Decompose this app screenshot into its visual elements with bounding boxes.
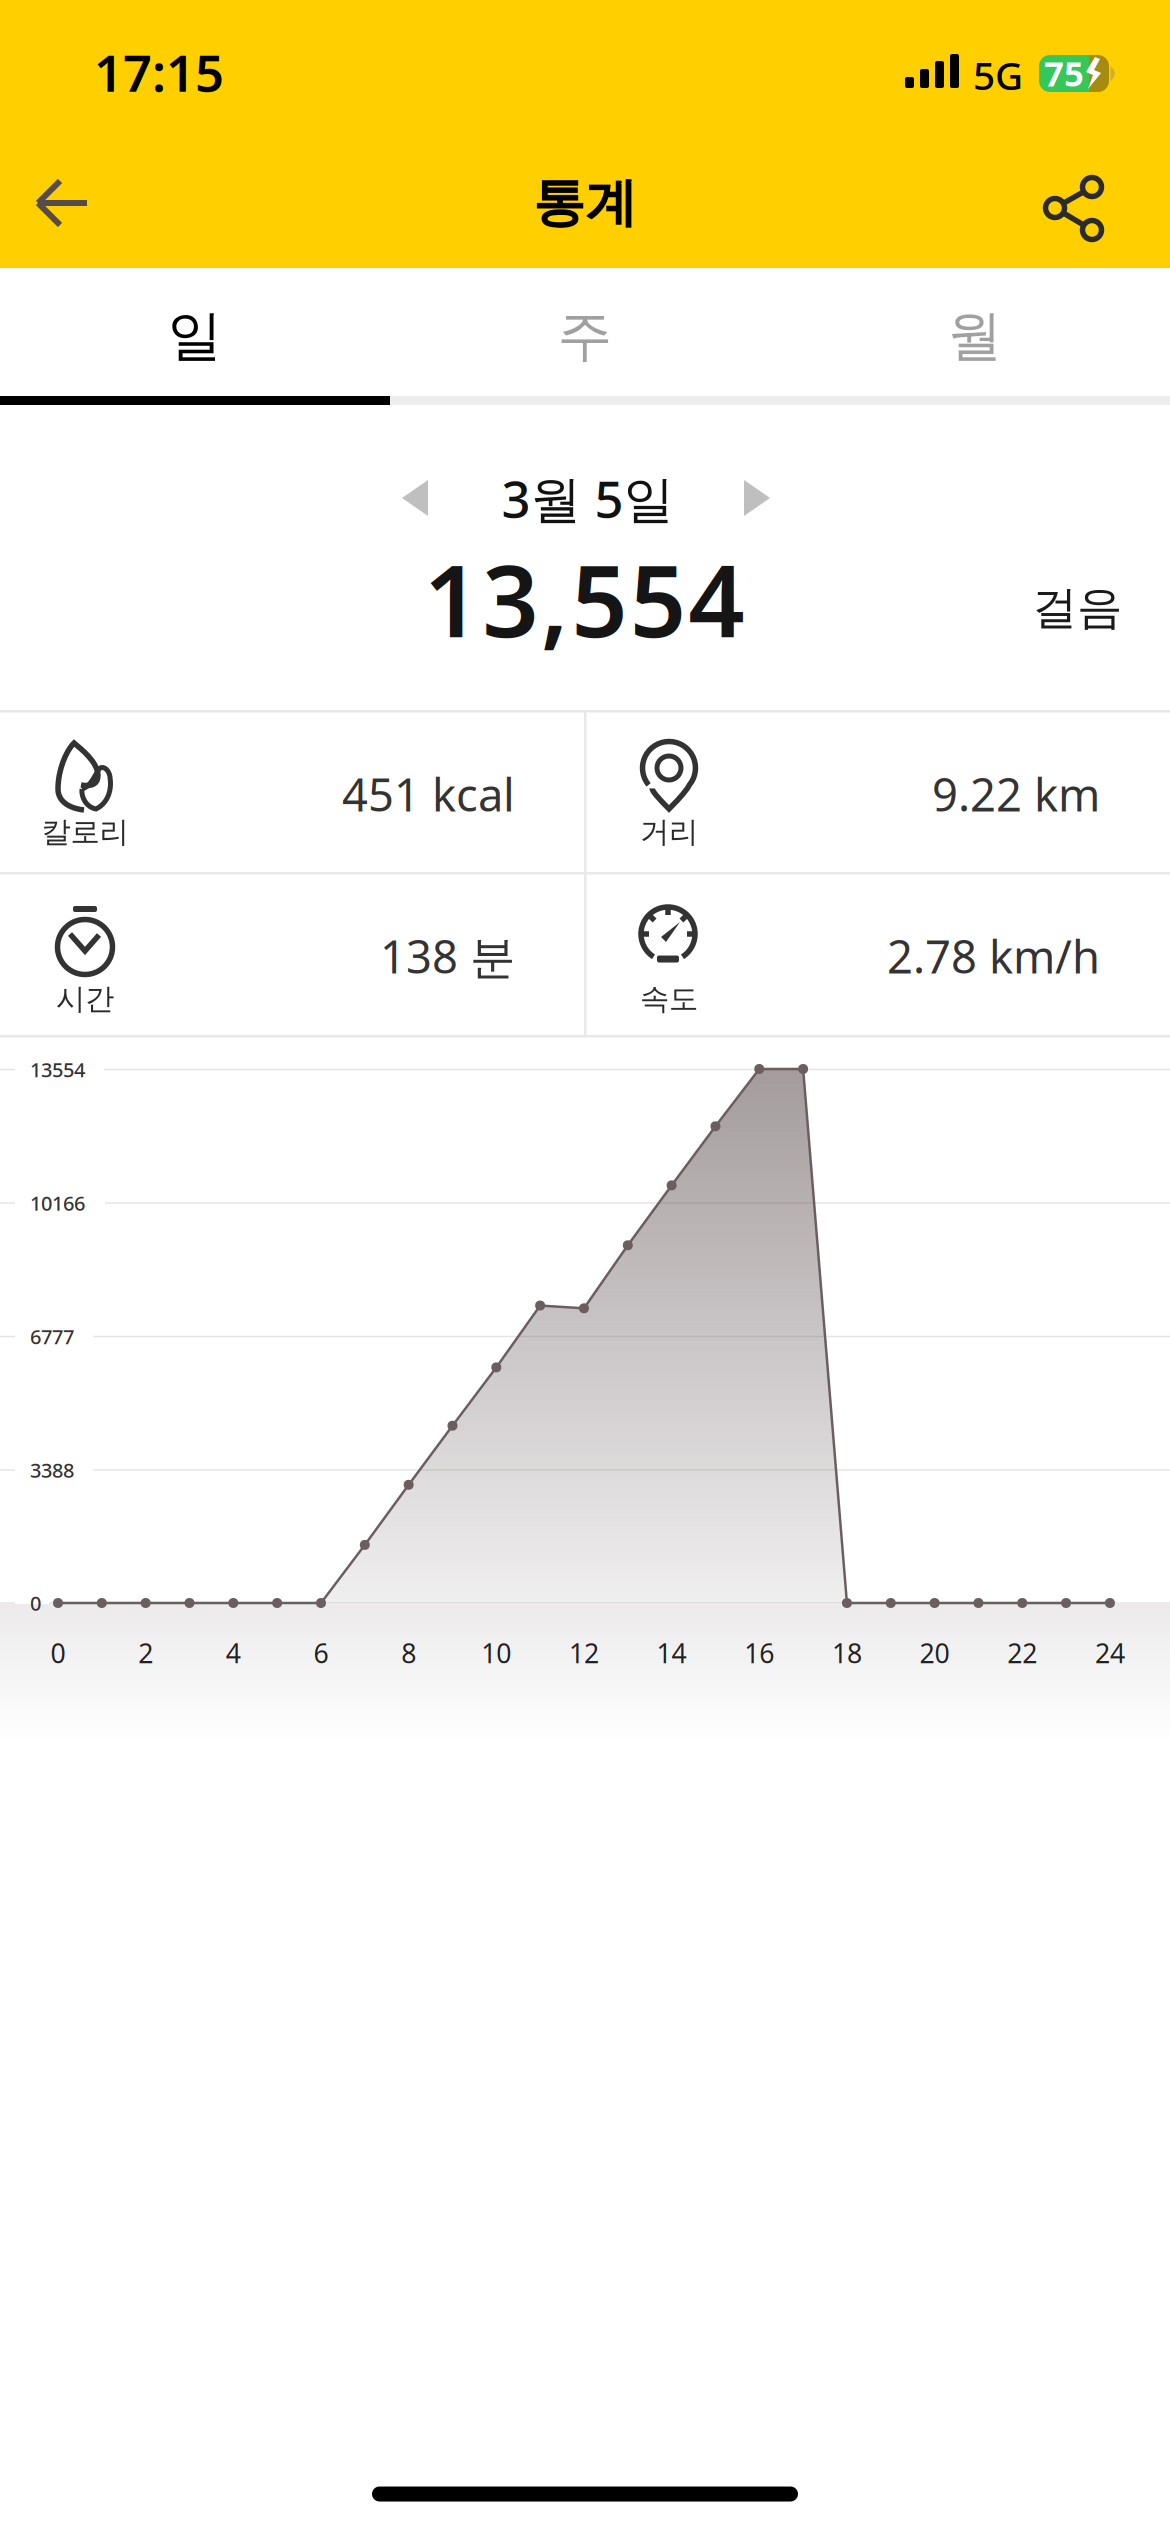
staticText: 13554 <box>30 1056 85 1083</box>
staticText: 75 <box>1044 50 1084 96</box>
staticText: 17:15 <box>94 38 224 106</box>
staticText: 10 <box>481 1635 511 1671</box>
staticText: 6777 <box>30 1323 74 1350</box>
button[interactable]: 일 <box>0 272 390 400</box>
staticText: 451 kcal <box>342 764 515 824</box>
staticText: 10166 <box>30 1190 85 1216</box>
staticText: 3월 5일 <box>501 464 674 532</box>
staticText: 0 <box>50 1635 65 1671</box>
staticText: 2 <box>138 1635 153 1671</box>
staticText: 18 <box>832 1635 862 1671</box>
staticText: 시간 <box>56 981 114 1017</box>
staticText: 6 <box>313 1635 328 1671</box>
staticText: 16 <box>744 1635 774 1671</box>
staticText: 5G <box>973 49 1023 101</box>
staticText: 13,554 <box>424 533 744 664</box>
staticText: 걸음 <box>1032 580 1122 636</box>
staticText: 일 <box>167 302 222 369</box>
staticText: 주 <box>557 302 612 369</box>
staticText: 8 <box>401 1635 416 1671</box>
staticText: 속도 <box>640 981 698 1017</box>
staticText: 138 분 <box>380 926 515 986</box>
staticText: 칼로리 <box>41 814 128 850</box>
button[interactable]: 주 <box>390 272 780 400</box>
staticText: 2.78 km/h <box>887 926 1100 986</box>
staticText: 0 <box>30 1590 41 1616</box>
button[interactable]: Share <box>1023 157 1123 257</box>
button[interactable]: Next day <box>725 466 789 530</box>
staticText: 14 <box>657 1635 687 1671</box>
staticText: 3388 <box>30 1457 74 1483</box>
staticText: 월 <box>947 302 1002 369</box>
staticText: 22 <box>1007 1635 1037 1671</box>
button[interactable]: 월 <box>780 272 1170 400</box>
staticText: 9.22 km <box>932 764 1100 824</box>
staticText: 24 <box>1095 1635 1125 1671</box>
staticText: 12 <box>569 1635 599 1671</box>
button[interactable]: Back <box>12 153 112 253</box>
staticText: 20 <box>920 1635 950 1671</box>
staticText: 거리 <box>640 814 698 850</box>
staticText: 4 <box>226 1635 241 1671</box>
staticText: 통계 <box>533 171 637 235</box>
button[interactable]: Previous day <box>383 466 447 530</box>
